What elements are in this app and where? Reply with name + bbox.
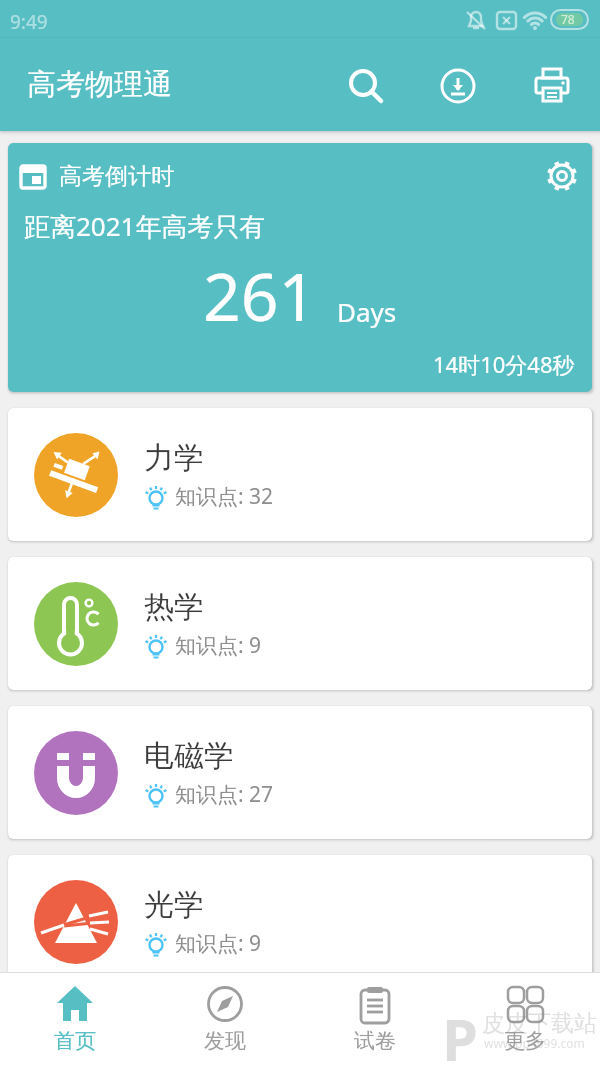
staticText: P bbox=[442, 999, 479, 1067]
staticText: 力学 bbox=[144, 439, 204, 477]
staticText: 261 bbox=[203, 250, 317, 340]
staticText: 9:49 bbox=[10, 9, 48, 35]
button[interactable] bbox=[544, 158, 580, 194]
button[interactable]: 试卷 bbox=[300, 973, 450, 1067]
staticText: 距离2021年高考只有 bbox=[24, 208, 266, 244]
button[interactable]: 热学 bbox=[8, 557, 592, 690]
staticText: 78 bbox=[561, 11, 575, 27]
button[interactable]: 更多 bbox=[450, 973, 600, 1067]
staticText: 电磁学 bbox=[144, 737, 234, 775]
staticText: 知识点: 27 bbox=[175, 780, 274, 809]
staticText: 光学 bbox=[144, 886, 204, 924]
staticText: 热学 bbox=[144, 588, 204, 626]
button[interactable] bbox=[434, 62, 482, 110]
staticText: 皮皮下载站 bbox=[482, 1009, 597, 1038]
button[interactable]: 首页 bbox=[0, 973, 150, 1067]
button[interactable]: 力学 bbox=[8, 408, 592, 541]
button[interactable]: 高考倒计时 bbox=[8, 143, 592, 392]
staticText: 更多 bbox=[504, 1028, 546, 1054]
staticText: 发现 bbox=[204, 1028, 246, 1054]
button[interactable] bbox=[528, 62, 576, 110]
staticText: 试卷 bbox=[354, 1028, 396, 1054]
staticText: 高考物理通 bbox=[27, 66, 172, 103]
staticText: 首页 bbox=[54, 1028, 96, 1054]
staticText: 高考倒计时 bbox=[59, 162, 174, 191]
button[interactable] bbox=[340, 60, 388, 108]
staticText: 14时10分48秒 bbox=[433, 349, 575, 379]
staticText: 知识点: 9 bbox=[175, 631, 262, 660]
button[interactable]: 光学 bbox=[8, 855, 592, 988]
staticText: 知识点: 9 bbox=[175, 929, 262, 958]
staticText: 知识点: 32 bbox=[175, 482, 274, 511]
staticText: Days bbox=[337, 294, 397, 329]
button[interactable]: 发现 bbox=[150, 973, 300, 1067]
button[interactable]: 电磁学 bbox=[8, 706, 592, 839]
staticText: www.pp4099.com bbox=[484, 1035, 585, 1051]
